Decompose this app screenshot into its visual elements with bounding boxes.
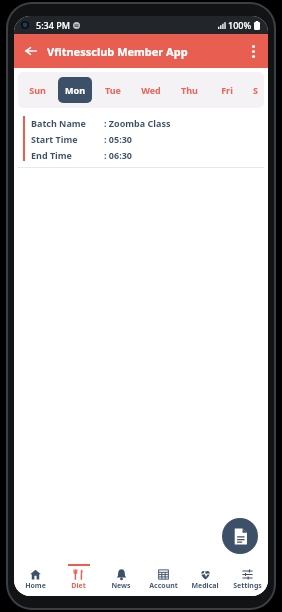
staticText: : 06:30 — [104, 149, 132, 161]
button[interactable]: Wed — [132, 77, 170, 103]
staticText: Start Time — [31, 133, 104, 145]
staticText: S — [253, 84, 258, 96]
staticText: News — [111, 581, 131, 591]
button[interactable]: Document — [222, 518, 258, 554]
button[interactable]: Tue — [94, 77, 132, 103]
button[interactable]: S — [246, 77, 264, 103]
staticText: : Zoomba Class — [104, 117, 171, 129]
staticText: Settings — [233, 581, 262, 591]
staticText: : 05:30 — [104, 133, 132, 145]
staticText: Vfitnessclub Member App — [47, 44, 188, 59]
staticText: Thu — [181, 84, 198, 96]
button[interactable]: Medical — [184, 564, 226, 596]
button[interactable]: Account — [142, 564, 184, 596]
button[interactable]: Settings — [226, 564, 268, 596]
staticText: Medical — [191, 581, 219, 591]
button[interactable]: Thu — [170, 77, 208, 103]
button[interactable]: Batch Name — [18, 112, 264, 170]
button[interactable]: Fri — [208, 77, 246, 103]
staticText: Diet — [71, 581, 86, 591]
button[interactable]: News — [100, 564, 142, 596]
staticText: Wed — [141, 84, 161, 96]
button[interactable]: Sun — [18, 77, 56, 103]
button[interactable]: Mon — [58, 77, 92, 103]
staticText: Account — [149, 581, 178, 591]
staticText: 100% — [228, 19, 252, 31]
staticText: Home — [25, 581, 46, 591]
staticText: Fri — [221, 84, 233, 96]
staticText: Sun — [29, 84, 46, 96]
button[interactable]: Back — [20, 40, 42, 62]
staticText: Tue — [105, 84, 121, 96]
staticText: Batch Name — [31, 117, 104, 129]
button[interactable]: More options — [242, 40, 264, 62]
staticText: End Time — [31, 149, 104, 161]
button[interactable]: Home — [14, 564, 57, 596]
button[interactable]: Diet — [57, 564, 100, 596]
staticText: 5:34 PM — [36, 19, 70, 31]
staticText: Mon — [65, 84, 85, 96]
